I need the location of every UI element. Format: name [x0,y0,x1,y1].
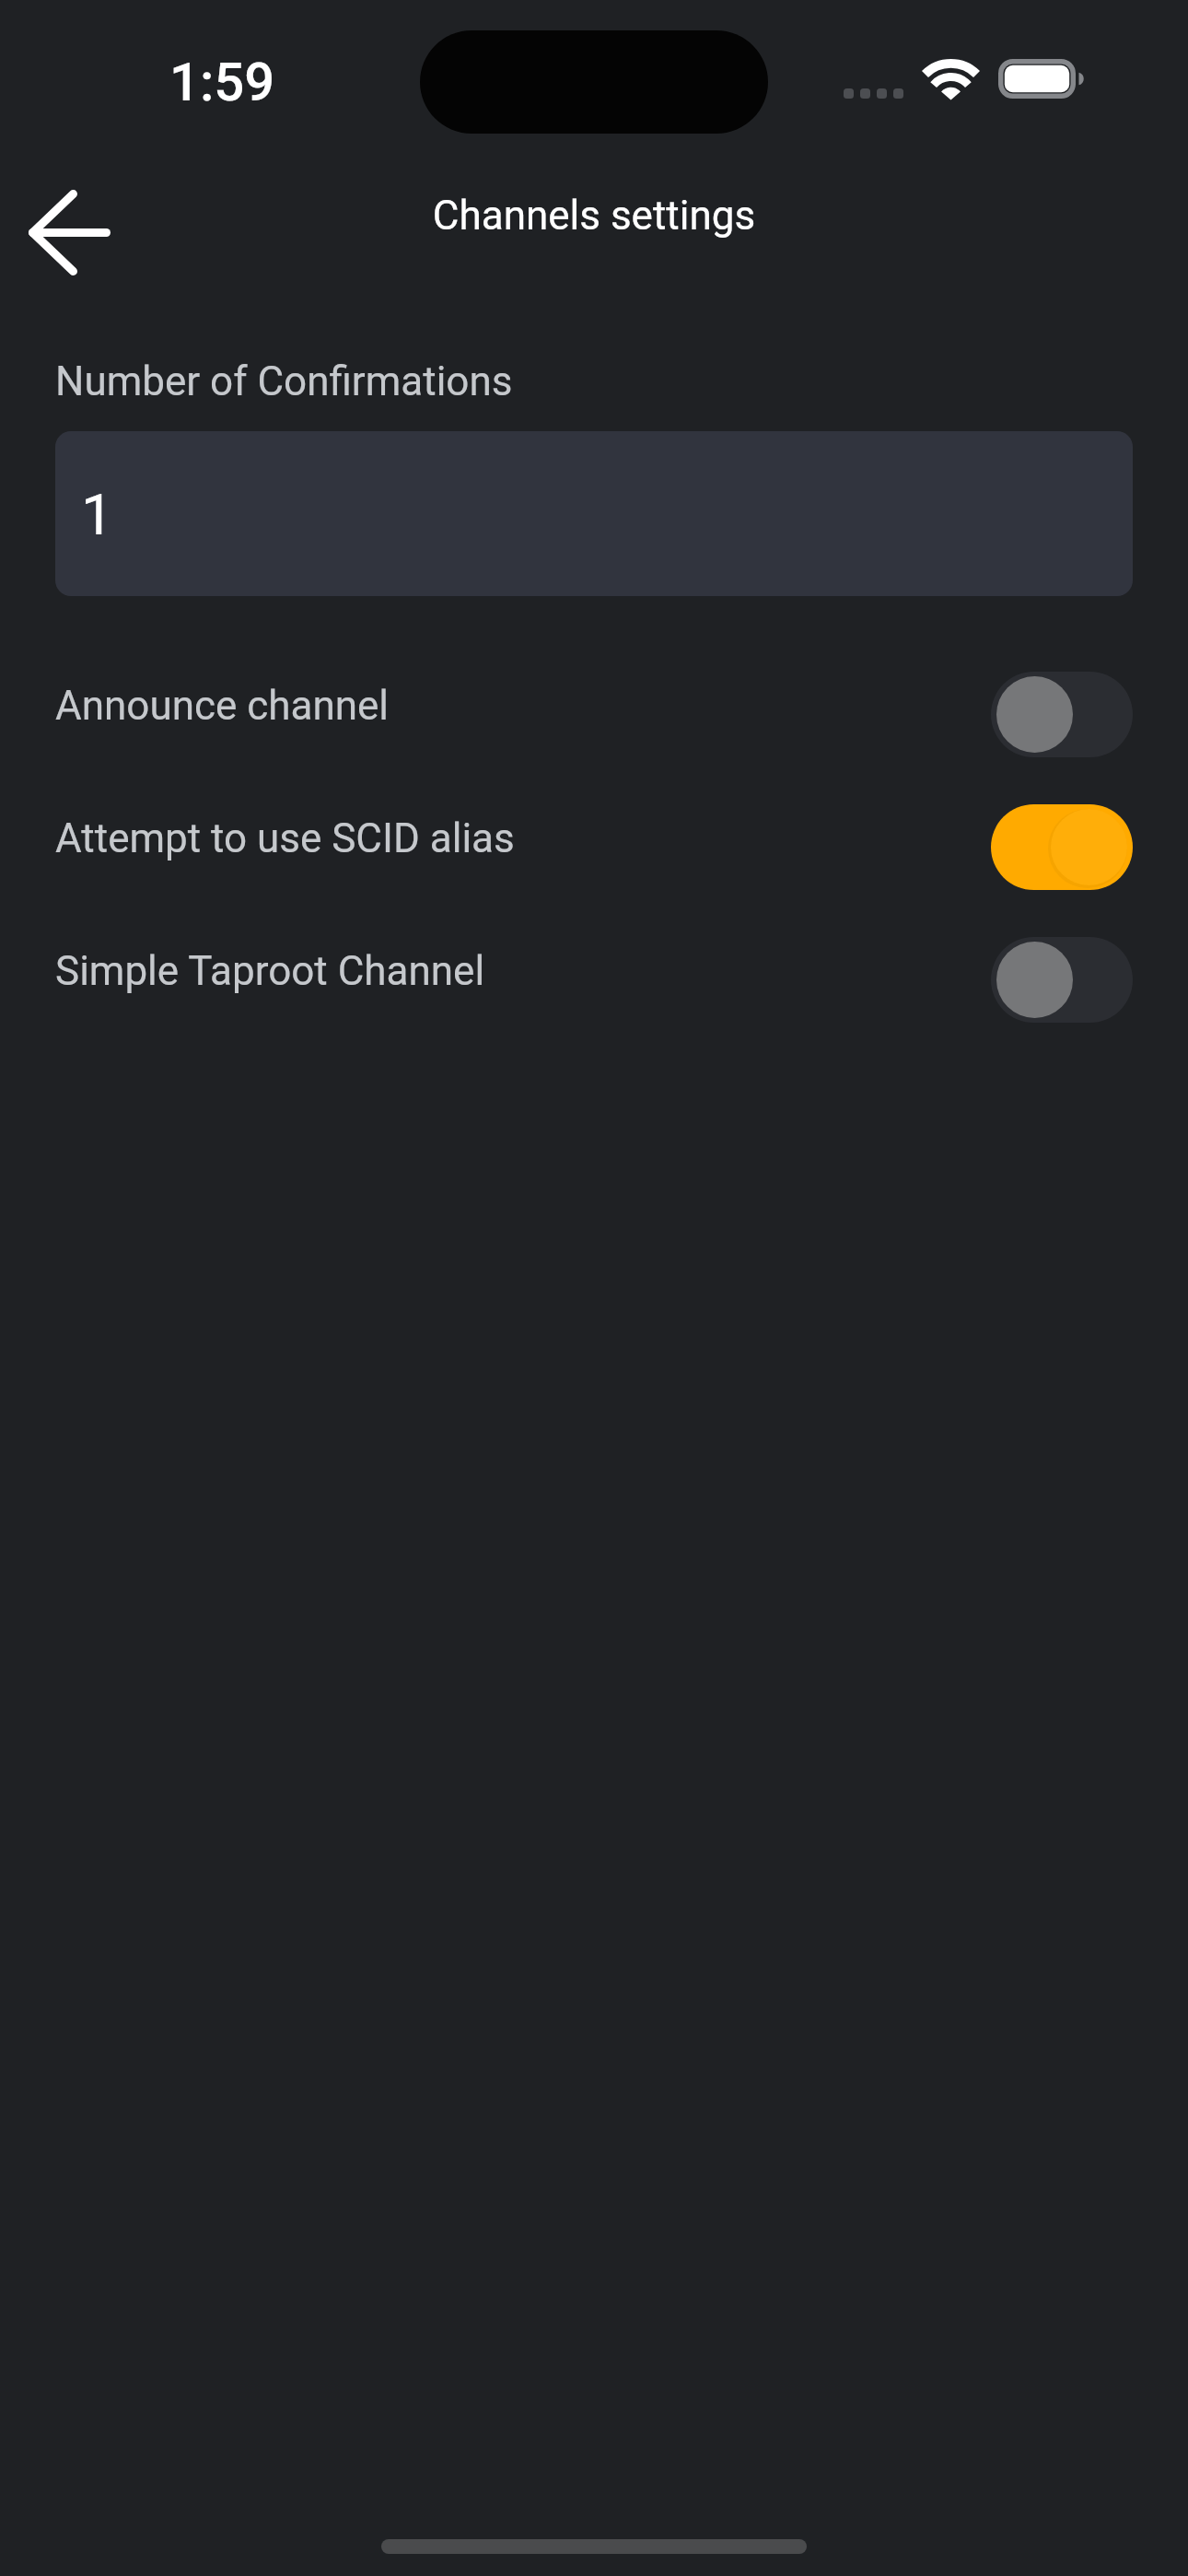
other: Wi-Fi [924,59,978,100]
staticText: Attempt to use SCID alias [55,814,515,862]
other: Battery [998,59,1085,100]
button[interactable]: Back [9,172,129,292]
button[interactable]: Simple Taproot Channel toggle [991,937,1133,1023]
button[interactable]: 1 [55,431,1133,596]
staticText: Simple Taproot Channel [55,947,485,995]
button[interactable]: Announce channel [0,648,1188,781]
staticText: Number of Confirmations [55,357,513,405]
button[interactable]: Announce channel toggle [991,672,1133,757]
button[interactable]: Attempt to use SCID alias [0,780,1188,914]
staticText: Announce channel [55,682,390,730]
other: Cellular signal [844,88,903,100]
button[interactable]: Simple Taproot Channel [0,913,1188,1047]
button[interactable]: Attempt to use SCID alias toggle [991,804,1133,890]
staticText: 1:59 [169,51,275,113]
staticText: Channels settings [0,192,1188,240]
staticText: 1 [81,481,113,548]
